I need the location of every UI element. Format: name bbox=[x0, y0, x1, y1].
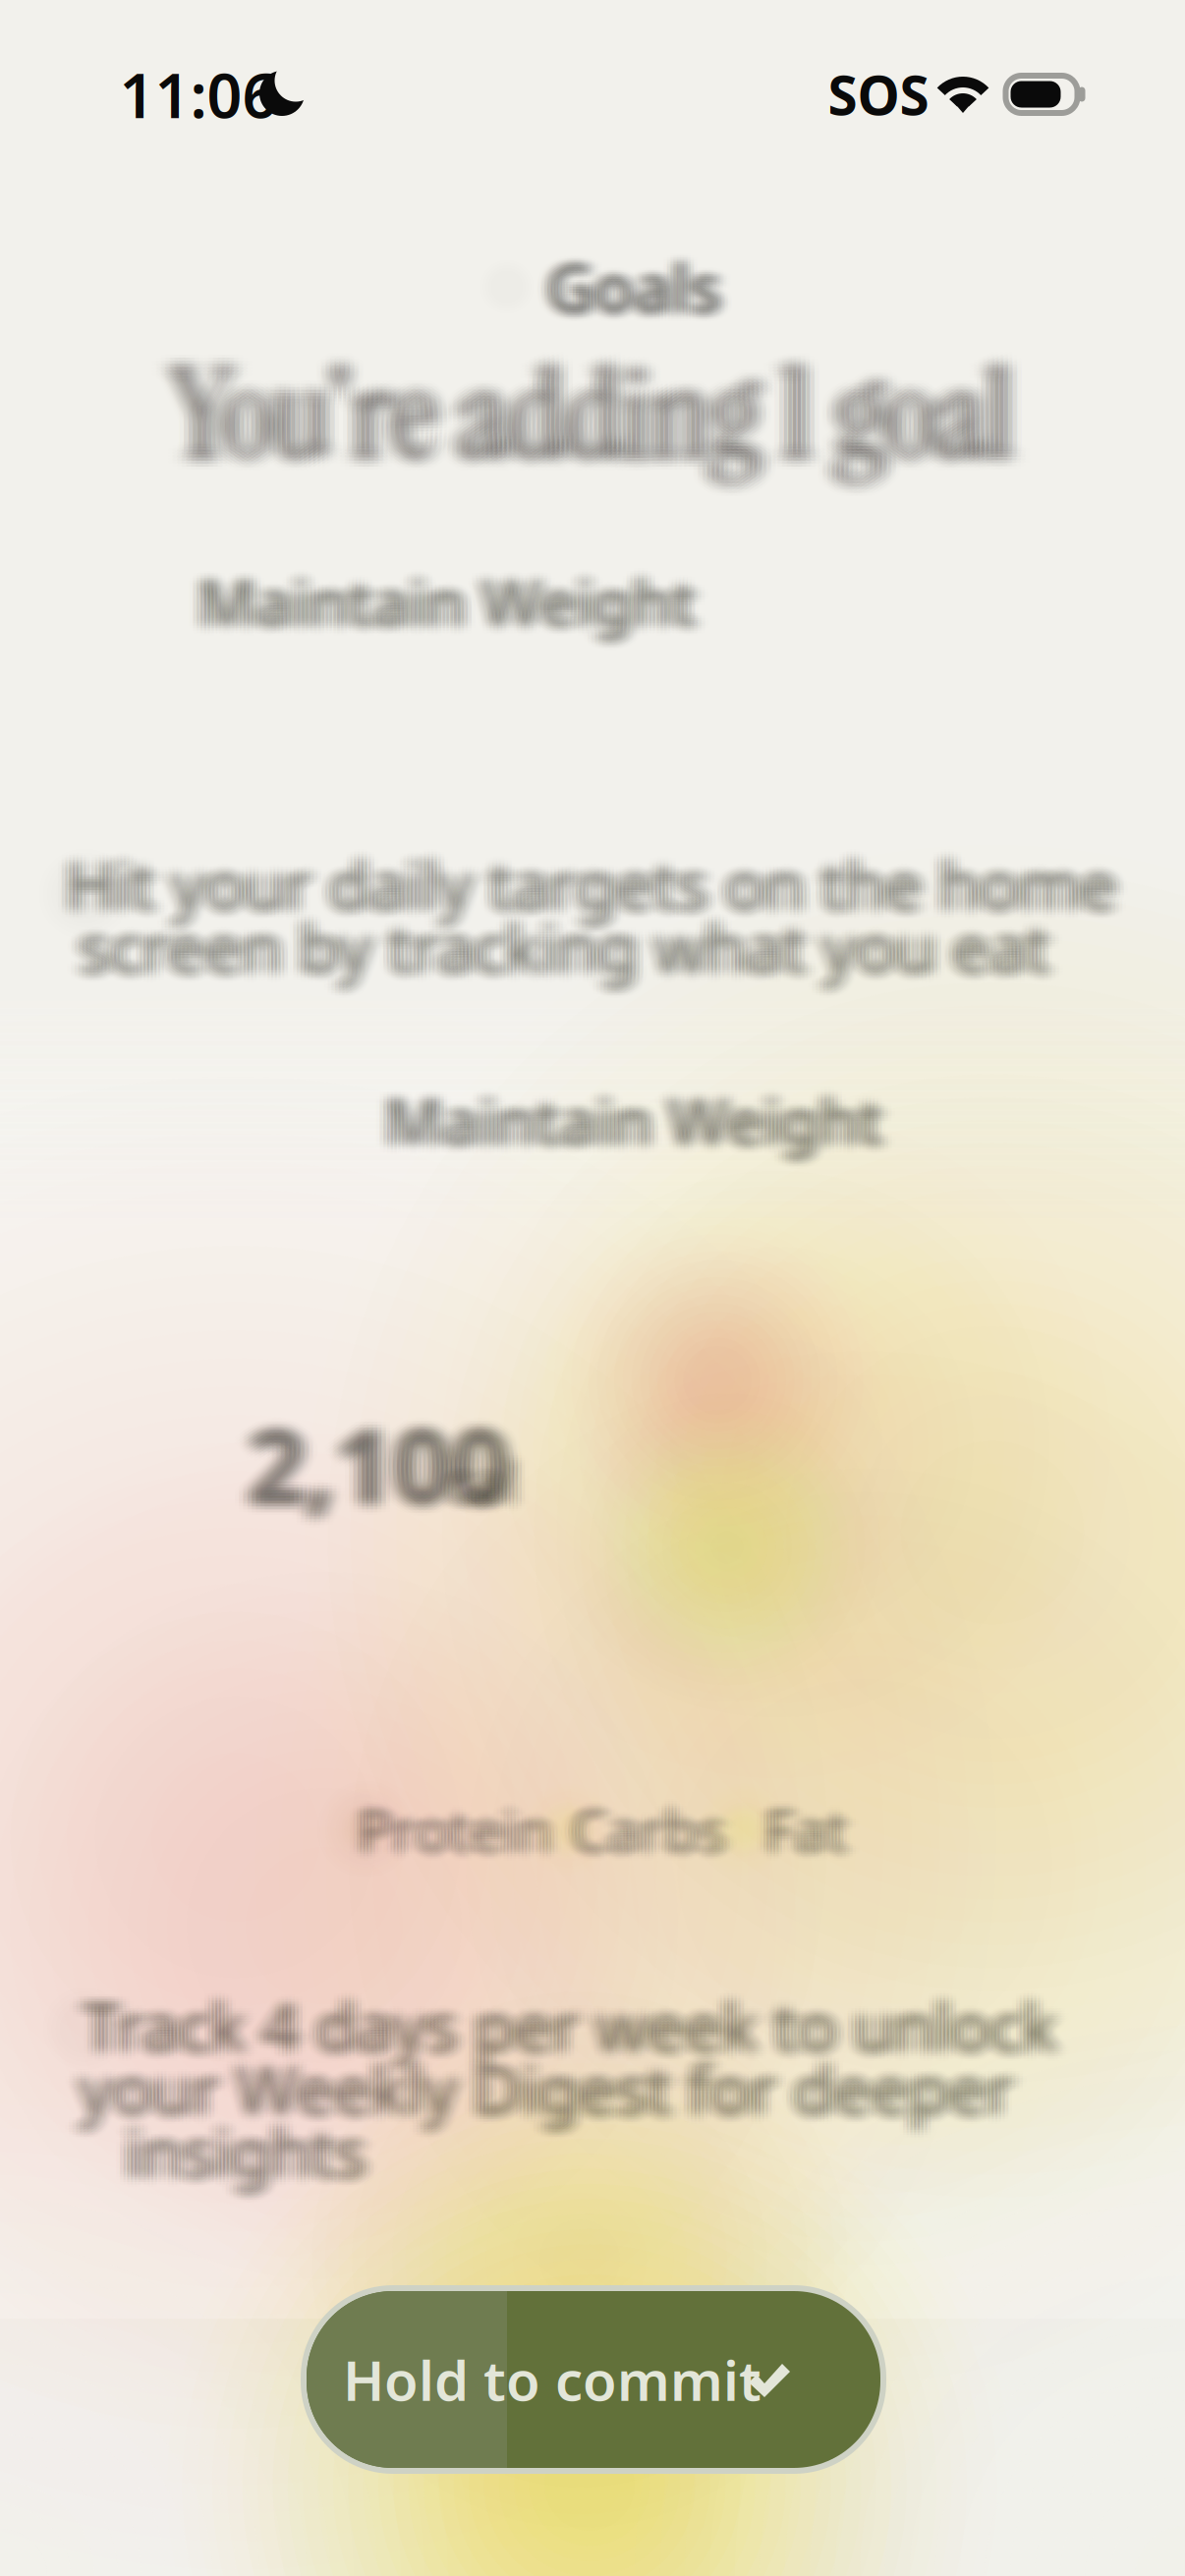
staticText: Track 4 days per week to unlock bbox=[79, 1975, 1053, 2062]
staticText: screen by tracking what you eat bbox=[75, 896, 1046, 983]
staticText: Goals bbox=[533, 234, 707, 321]
staticText: Maintain Weight bbox=[213, 557, 711, 641]
staticText: 60g bbox=[647, 1337, 763, 1424]
staticText: insights bbox=[129, 2108, 370, 2195]
staticText: cal bbox=[444, 1453, 519, 1530]
staticText: screen by tracking what you eat bbox=[64, 913, 1035, 1000]
staticText: Carbs bbox=[574, 1782, 729, 1859]
staticText: insights bbox=[125, 2111, 366, 2198]
staticText: Protein bbox=[354, 1791, 549, 1868]
staticText: Maintain Weight bbox=[191, 560, 689, 643]
staticText: Hit your daily targets on the home bbox=[70, 841, 1120, 928]
staticText: Maintain Weight bbox=[187, 550, 685, 633]
staticText: You're adding 1 goal bbox=[176, 333, 1018, 496]
staticText: Protein bbox=[361, 1789, 556, 1865]
staticText: Carbs bbox=[574, 1796, 729, 1872]
staticText: You're adding 1 goal bbox=[158, 339, 999, 503]
staticText: Goals bbox=[540, 243, 714, 330]
staticText: You're adding 1 goal bbox=[190, 333, 1031, 496]
staticText: insights bbox=[140, 2106, 381, 2193]
staticText: 60g bbox=[665, 1337, 781, 1424]
staticText: cal bbox=[448, 1441, 522, 1517]
staticText: Fat bbox=[768, 1786, 850, 1863]
staticText: 2,100 bbox=[239, 1384, 500, 1520]
staticText: 2,100 bbox=[235, 1408, 496, 1543]
staticText: Fat bbox=[761, 1782, 844, 1859]
staticText: Carbs bbox=[568, 1782, 723, 1859]
staticText: insights bbox=[118, 2106, 359, 2193]
staticText: 60g bbox=[665, 1347, 781, 1434]
staticText: 2,100 bbox=[243, 1390, 505, 1526]
staticText: Hit your daily targets on the home bbox=[52, 848, 1102, 935]
staticText: Goals bbox=[550, 252, 724, 339]
staticText: Protein bbox=[368, 1796, 562, 1872]
staticText: Goals bbox=[557, 237, 731, 324]
staticText: your Weekly Digest for deeper bbox=[72, 2045, 1006, 2132]
staticText: Protein bbox=[354, 1789, 549, 1865]
staticText: You're adding 1 goal bbox=[167, 333, 1009, 496]
staticText: insights bbox=[125, 2116, 366, 2202]
staticText: Maintain Weight bbox=[374, 1088, 872, 1172]
staticText: Carbs bbox=[571, 1789, 726, 1865]
staticText: your Weekly Digest for deeper bbox=[90, 2053, 1025, 2140]
staticText: Fat bbox=[754, 1793, 837, 1870]
staticText: insights bbox=[111, 2103, 351, 2190]
staticText: Protein bbox=[354, 1798, 549, 1874]
staticText: cal bbox=[429, 1446, 504, 1522]
staticText: 2,100 bbox=[239, 1387, 500, 1523]
staticText: your Weekly Digest for deeper bbox=[83, 2053, 1017, 2140]
staticText: screen by tracking what you eat bbox=[75, 911, 1046, 998]
staticText: Protein bbox=[368, 1793, 562, 1870]
staticText: 2,100 bbox=[252, 1402, 513, 1537]
staticText: 2,100 bbox=[265, 1384, 526, 1520]
staticText: Carbs bbox=[584, 1796, 739, 1872]
staticText: Goals bbox=[547, 246, 721, 333]
staticText: Hit your daily targets on the home bbox=[74, 831, 1124, 918]
staticText: 60g bbox=[662, 1335, 778, 1422]
staticText: Track 4 days per week to unlock bbox=[87, 1975, 1060, 2062]
staticText: Carbs bbox=[561, 1789, 716, 1865]
staticText: insights bbox=[133, 2113, 373, 2200]
staticText: your Weekly Digest for deeper bbox=[72, 2053, 1006, 2140]
staticText: Track 4 days per week to unlock bbox=[76, 1972, 1050, 2059]
staticText: 60g bbox=[654, 1342, 770, 1429]
button[interactable]: Hold to commit bbox=[301, 2285, 886, 2474]
staticText: Carbs bbox=[581, 1782, 736, 1859]
staticText: Fat bbox=[764, 1800, 847, 1877]
staticText: your Weekly Digest for deeper bbox=[83, 2045, 1017, 2132]
staticText: insights bbox=[122, 2118, 362, 2205]
staticText: Maintain Weight bbox=[191, 562, 689, 645]
staticText: Goals bbox=[547, 250, 721, 337]
staticText: 2,100 bbox=[256, 1384, 518, 1520]
staticText: Maintain Weight bbox=[381, 1088, 879, 1172]
staticText: 2,100 bbox=[231, 1405, 492, 1540]
staticText: Fat bbox=[771, 1798, 854, 1874]
staticText: Fat bbox=[768, 1789, 850, 1865]
staticText: 60g bbox=[651, 1340, 767, 1427]
staticText: Protein bbox=[361, 1786, 556, 1863]
staticText: Protein bbox=[364, 1793, 559, 1870]
staticText: Fat bbox=[751, 1786, 834, 1863]
staticText: Track 4 days per week to unlock bbox=[68, 1972, 1042, 2059]
staticText: Fat bbox=[778, 1800, 860, 1877]
staticText: 2,100 bbox=[239, 1396, 500, 1532]
staticText: Maintain Weight bbox=[202, 560, 700, 643]
staticText: Hit your daily targets on the home bbox=[63, 833, 1113, 920]
staticText: Goals bbox=[533, 237, 707, 324]
staticText: 2,100 bbox=[265, 1402, 526, 1537]
staticText: Track 4 days per week to unlock bbox=[90, 1985, 1064, 2072]
staticText: insights bbox=[114, 2101, 355, 2188]
staticText: Goals bbox=[543, 250, 717, 337]
staticText: Maintain Weight bbox=[209, 569, 707, 653]
staticText: Protein bbox=[358, 1789, 552, 1865]
staticText: 60g bbox=[662, 1345, 778, 1432]
staticText: Protein bbox=[358, 1782, 552, 1859]
staticText: your Weekly Digest for deeper bbox=[94, 2048, 1028, 2135]
staticText: your Weekly Digest for deeper bbox=[90, 2045, 1025, 2132]
staticText: 2,100 bbox=[231, 1396, 492, 1532]
staticText: Carbs bbox=[568, 1800, 723, 1877]
staticText: Hit your daily targets on the home bbox=[74, 841, 1124, 928]
staticText: cal bbox=[437, 1451, 512, 1527]
staticText: Fat bbox=[754, 1786, 837, 1863]
staticText: You're adding 1 goal bbox=[190, 342, 1031, 506]
